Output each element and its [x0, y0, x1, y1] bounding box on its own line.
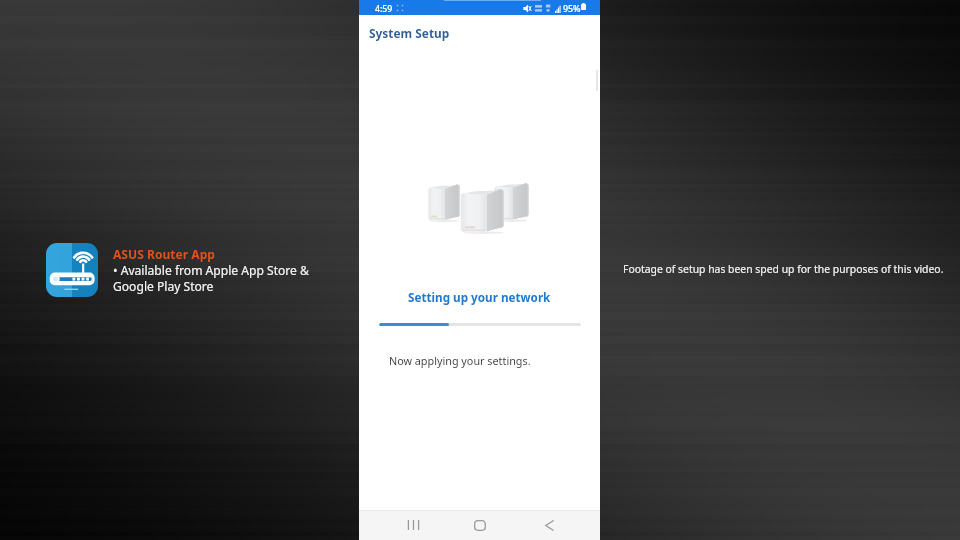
button[interactable]: Recent apps [384, 510, 442, 540]
button[interactable]: Home [450, 510, 510, 540]
button[interactable]: Back [520, 510, 578, 540]
staticText: 95% [563, 3, 581, 15]
staticText: • Available from Apple App Store & Googl… [113, 262, 309, 294]
staticText: Footage of setup has been sped up for th… [623, 262, 944, 276]
staticText: Setting up your network [408, 289, 551, 305]
staticText: Now applying your settings. [389, 353, 531, 368]
staticText: 4:59 [375, 3, 393, 15]
button[interactable]: ASUS Router App [46, 243, 98, 297]
staticText: System Setup [369, 25, 450, 41]
staticText: ASUS Router App [113, 246, 216, 262]
